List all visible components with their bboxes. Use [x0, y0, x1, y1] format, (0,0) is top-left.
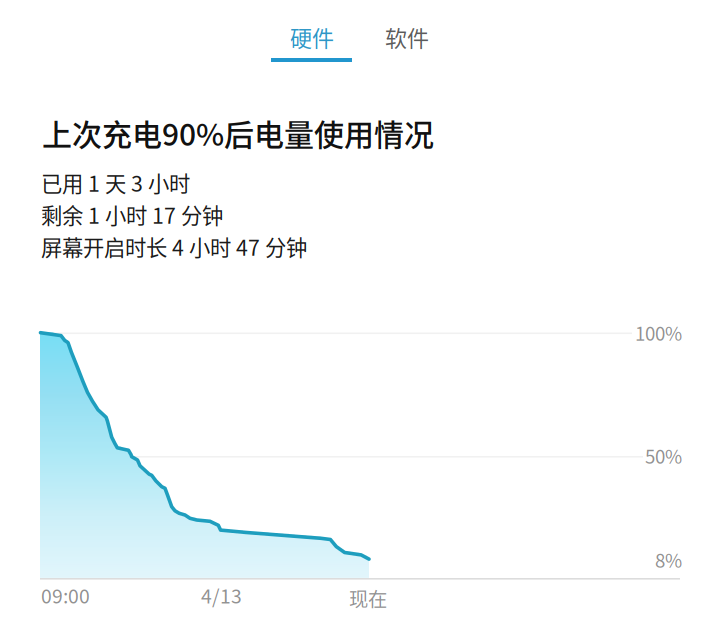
staticText: 软件	[385, 21, 429, 53]
button[interactable]: 硬件	[257, 0, 367, 62]
staticText: 屏幕开启时长 4 小时 47 分钟	[41, 231, 307, 262]
staticText: 已用 1 天 3 小时	[41, 167, 190, 198]
staticText: 100%	[635, 319, 682, 346]
staticText: 09:00	[41, 581, 90, 609]
staticText: 50%	[645, 442, 682, 469]
staticText: 剩余 1 小时 17 分钟	[41, 199, 223, 230]
staticText: 上次充电90%后电量使用情况	[42, 111, 434, 154]
staticText: 现在	[349, 584, 387, 612]
button[interactable]: 软件	[352, 0, 462, 62]
staticText: 4/13	[201, 581, 242, 609]
staticText: 8%	[655, 546, 682, 573]
staticText: 硬件	[290, 21, 334, 53]
